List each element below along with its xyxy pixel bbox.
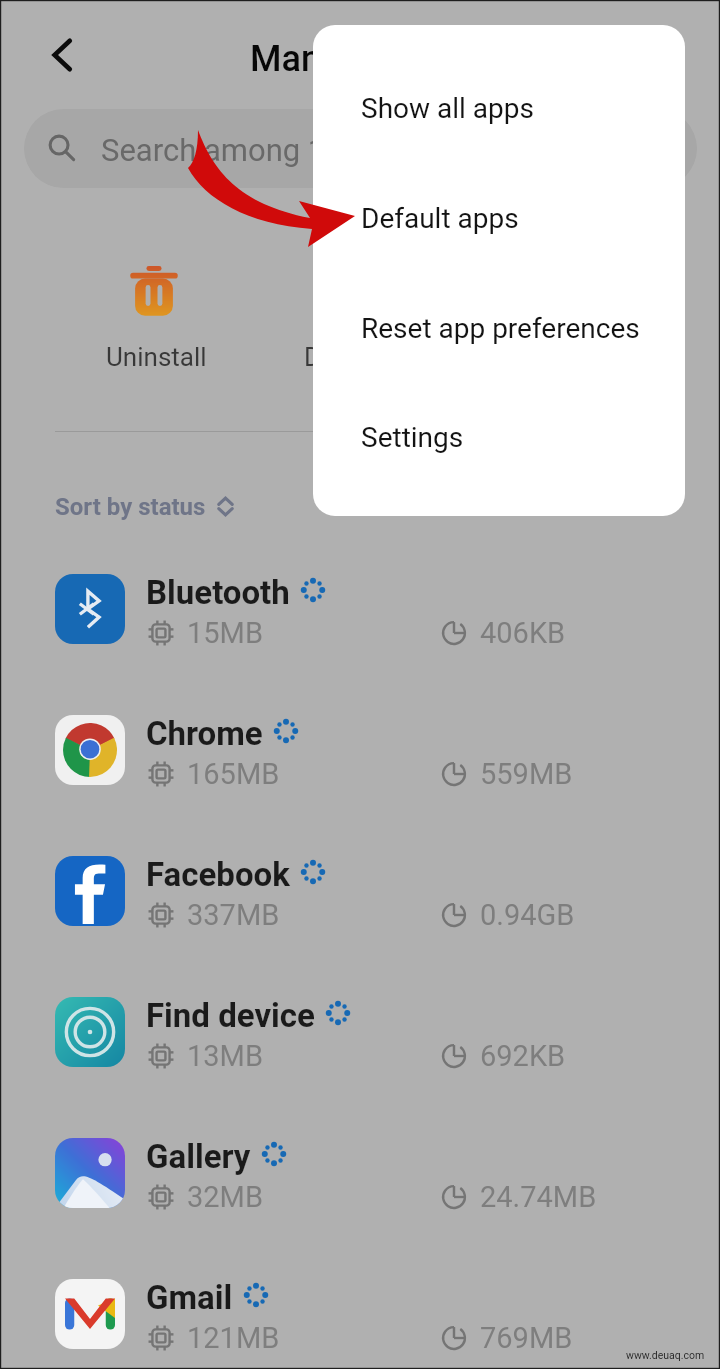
staticText: Gallery: [146, 1137, 251, 1176]
staticText: 32MB: [187, 1180, 263, 1214]
button[interactable]: Disable: [282, 255, 412, 380]
staticText: Gmail: [146, 1278, 233, 1317]
button[interactable]: Settings: [313, 393, 685, 481]
staticText: Chrome: [146, 714, 263, 753]
staticText: Default apps: [361, 202, 519, 235]
staticText: www.deuaq.com: [626, 1349, 705, 1361]
staticText: 24.74MB: [480, 1180, 597, 1214]
staticText: 165MB: [187, 757, 280, 791]
button[interactable]: Sort by status: [55, 493, 236, 521]
staticText: Reset app preferences: [361, 312, 640, 345]
button[interactable]: Facebook: [0, 844, 720, 985]
staticText: Settings: [361, 421, 464, 454]
button[interactable]: Search among 190 apps: [24, 109, 697, 188]
staticText: Facebook: [146, 855, 290, 894]
button[interactable]: Chrome: [0, 703, 720, 844]
staticText: Disable: [304, 342, 390, 372]
staticText: 337MB: [187, 898, 280, 932]
button[interactable]: Reset app preferences: [313, 284, 685, 372]
button[interactable]: Find device: [0, 985, 720, 1126]
staticText: Uninstall: [106, 342, 207, 372]
staticText: 0.94GB: [480, 898, 575, 932]
button[interactable]: Default apps: [313, 174, 685, 262]
staticText: Show all apps: [361, 92, 534, 125]
staticText: 15MB: [187, 616, 263, 650]
staticText: 13MB: [187, 1039, 263, 1073]
button[interactable]: Uninstall: [90, 255, 220, 380]
button[interactable]: Show all apps: [313, 64, 685, 152]
staticText: 121MB: [187, 1321, 280, 1355]
staticText: Find device: [146, 996, 315, 1035]
button[interactable]: Gallery: [0, 1126, 720, 1267]
staticText: Manage apps: [250, 38, 468, 80]
button[interactable]: Gmail: [0, 1267, 720, 1369]
staticText: Search among 190 apps: [101, 132, 436, 168]
staticText: Sort by status: [55, 493, 206, 521]
staticText: 769MB: [480, 1321, 573, 1355]
button[interactable]: Back: [34, 25, 94, 85]
button[interactable]: Bluetooth: [0, 562, 720, 703]
staticText: 692KB: [480, 1039, 566, 1073]
staticText: 559MB: [480, 757, 573, 791]
staticText: Bluetooth: [146, 573, 290, 612]
staticText: 406KB: [480, 616, 566, 650]
